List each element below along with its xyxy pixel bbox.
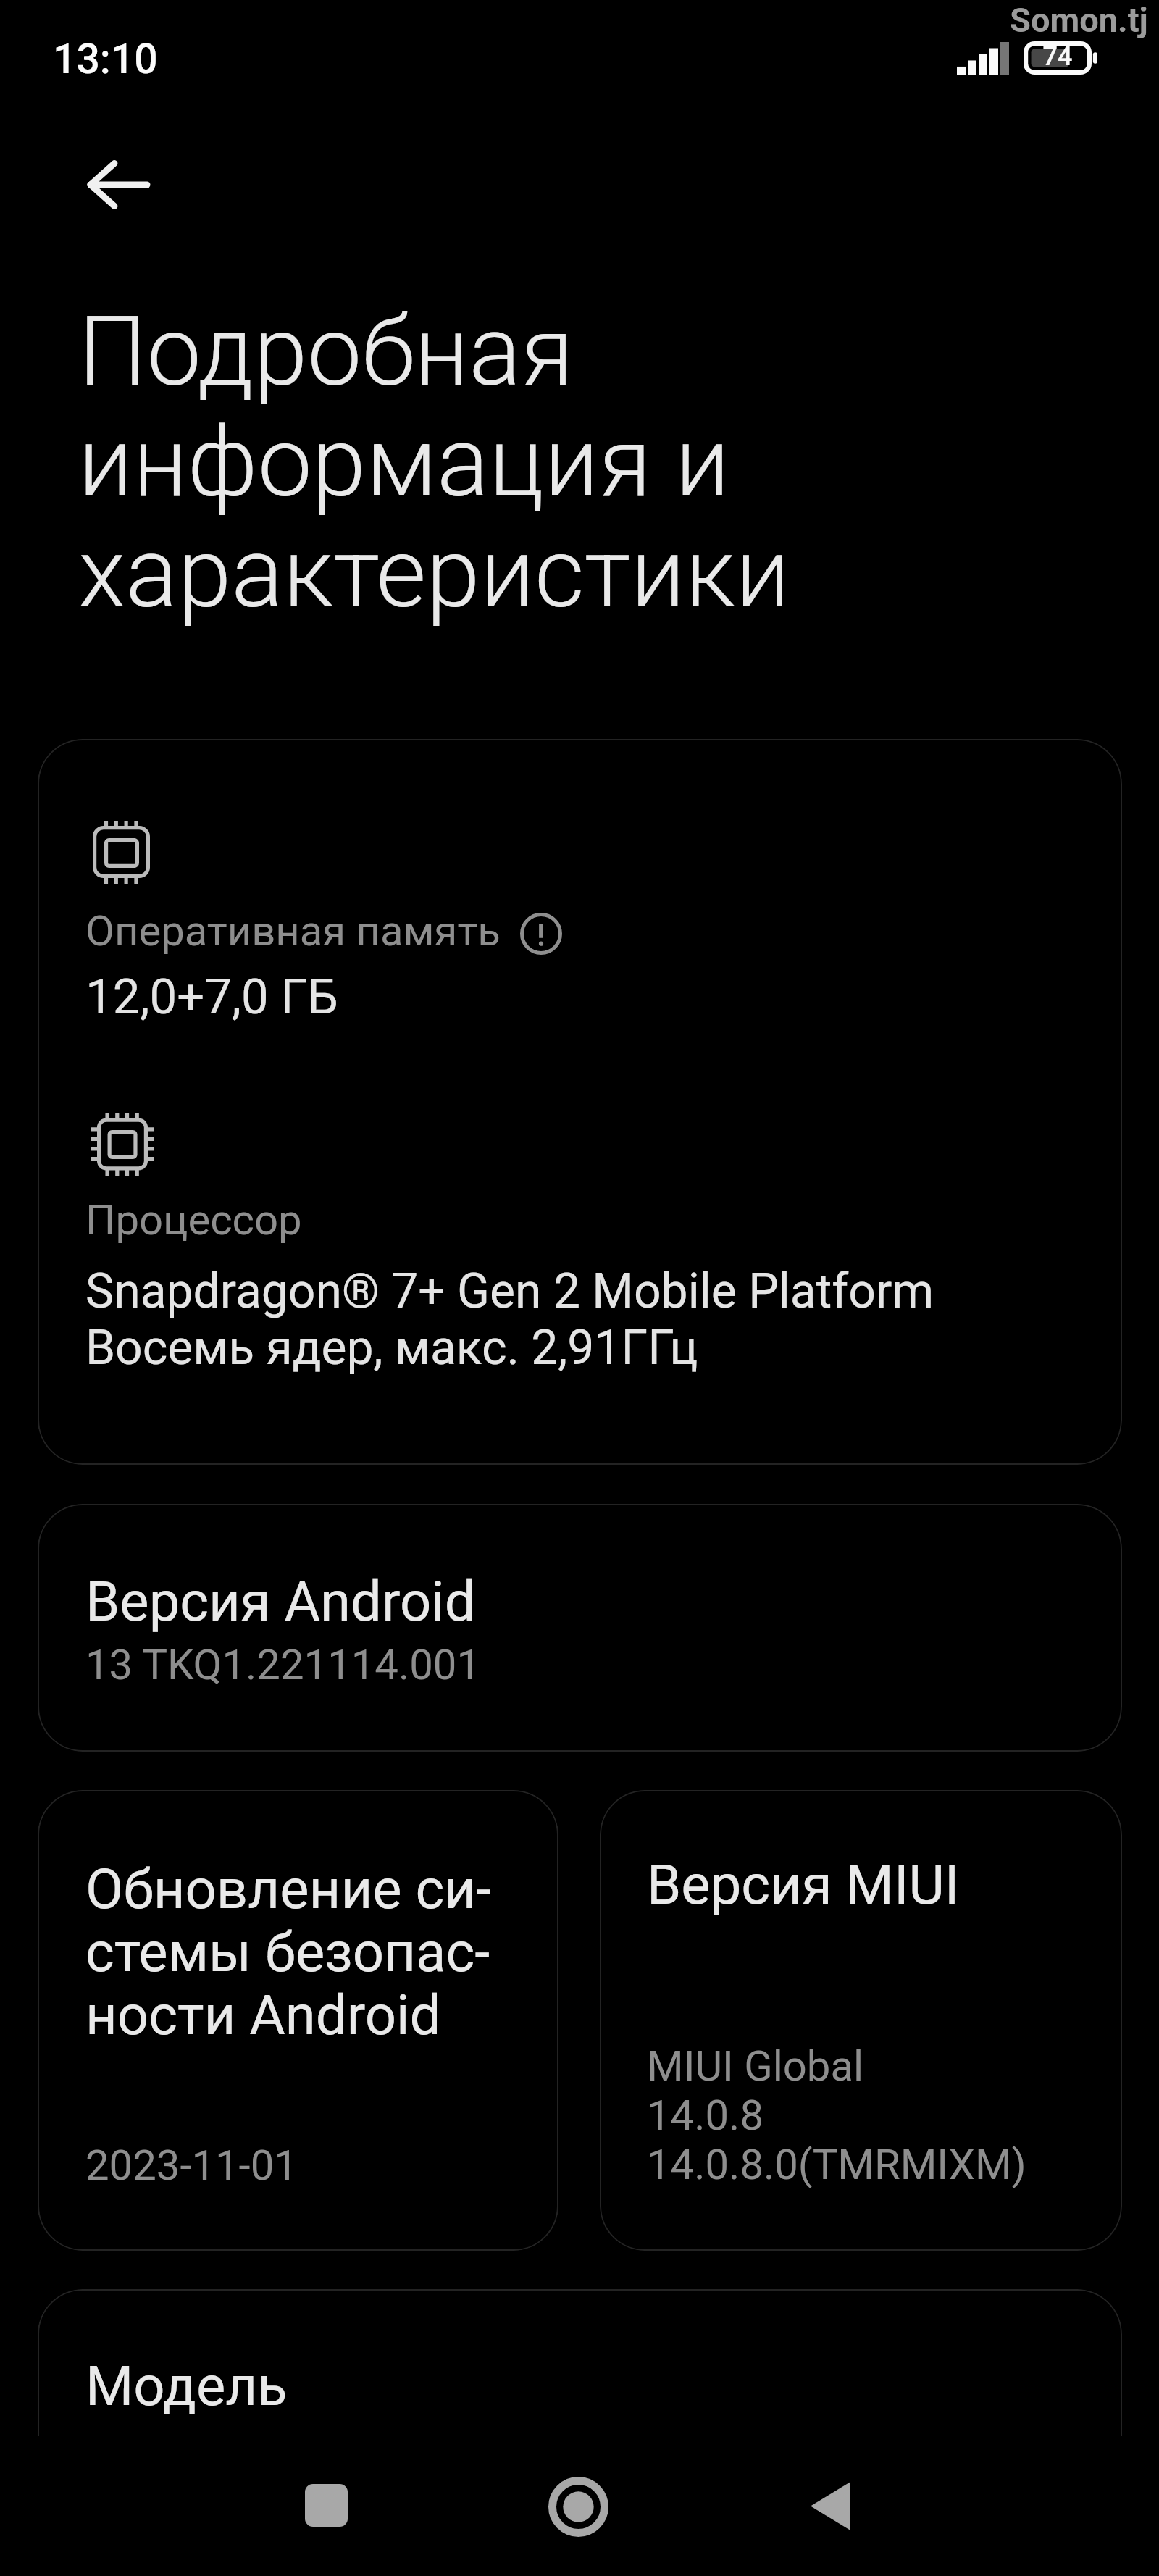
staticText: Модель <box>85 2354 288 2418</box>
staticText: Snapdragon® 7+ Gen 2 Mobile Platform Вос… <box>85 1263 934 1376</box>
staticText: Процессор <box>85 1195 302 1245</box>
staticText: 13:10 <box>53 35 158 83</box>
staticText: Версия MIUI <box>647 1852 960 1917</box>
button[interactable]: Версия Android <box>38 1504 1122 1752</box>
staticText: Оперативная память <box>85 906 501 955</box>
staticText: Подробная информация и характеристики <box>78 297 790 630</box>
button[interactable]: Recent apps <box>271 2450 381 2560</box>
staticText: 13 TKQ1.221114.001 <box>85 1640 481 1689</box>
staticText: Версия Android <box>85 1569 476 1634</box>
button[interactable]: Home <box>523 2451 633 2562</box>
button[interactable]: Back <box>775 2451 885 2561</box>
staticText: Somon.tj <box>1010 0 1148 40</box>
button[interactable]: Обновление си- стемы безопас- ности Andr… <box>38 1790 558 2251</box>
staticText: 12,0+7,0 ГБ <box>85 969 338 1026</box>
staticText: 2023-11-01 <box>85 2141 298 2190</box>
staticText: Обновление си- стемы безопас- ности Andr… <box>85 1858 492 2047</box>
button[interactable]: Версия MIUI <box>600 1790 1122 2251</box>
button[interactable]: Оперативная память <box>38 739 1122 1465</box>
button[interactable]: Back <box>71 138 167 231</box>
staticText: 74 <box>1036 41 1079 72</box>
button[interactable]: Модель <box>38 2289 1122 2537</box>
staticText: MIUI Global 14.0.8 14.0.8.0(TMRMIXM) <box>647 2041 1026 2189</box>
